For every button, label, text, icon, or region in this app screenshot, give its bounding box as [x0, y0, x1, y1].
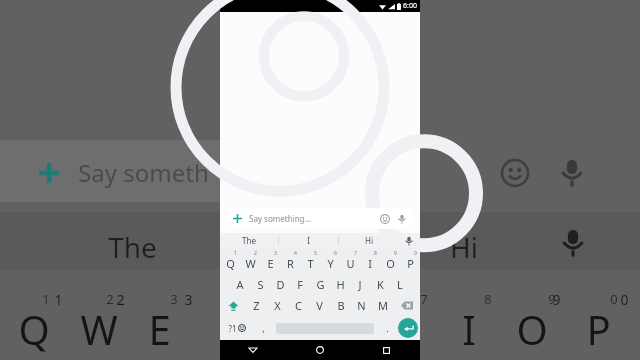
button[interactable]: M	[372, 295, 393, 316]
staticText: U	[346, 256, 355, 271]
button[interactable]: Hi	[339, 233, 398, 248]
button[interactable]: 0	[400, 249, 420, 273]
staticText: 3	[274, 250, 277, 257]
staticText: W	[245, 256, 256, 271]
button[interactable]: K	[370, 274, 390, 295]
staticText: 2	[106, 290, 114, 308]
button[interactable]: Home	[286, 340, 353, 360]
button[interactable]: Back	[220, 340, 286, 360]
staticText: 4	[232, 290, 240, 308]
button[interactable]: L	[390, 274, 410, 295]
button[interactable]: H	[330, 274, 350, 295]
staticText: S	[257, 277, 264, 292]
staticText: The	[242, 235, 256, 246]
staticText: 8	[374, 250, 377, 257]
staticText: B	[337, 298, 345, 313]
button[interactable]: Recent apps	[353, 340, 420, 360]
staticText: 4	[294, 250, 297, 257]
staticText: 2	[254, 250, 257, 257]
button[interactable]: 1	[220, 249, 240, 273]
staticText: T	[307, 256, 314, 271]
button[interactable]: C	[288, 295, 309, 316]
staticText: A	[236, 277, 244, 292]
staticText: M	[378, 298, 388, 313]
staticText: 2	[116, 290, 125, 309]
button[interactable]: 6	[320, 249, 340, 273]
staticText: Q	[18, 302, 50, 356]
button[interactable]: Add attachment	[225, 208, 415, 229]
button[interactable]: Add attachment	[231, 212, 244, 225]
button[interactable]: 4	[280, 249, 300, 273]
button[interactable]: F	[290, 274, 310, 295]
staticText: 0	[620, 290, 629, 309]
button[interactable]: Backspace	[393, 295, 420, 316]
button[interactable]: J	[350, 274, 370, 295]
button[interactable]: 5	[300, 249, 320, 273]
button[interactable]: X	[267, 295, 288, 316]
staticText: 1	[42, 290, 50, 308]
staticText: ?1	[228, 323, 237, 334]
button[interactable]: Send	[398, 318, 418, 338]
button[interactable]: 2	[240, 249, 260, 273]
staticText: 6:00	[403, 1, 417, 11]
button[interactable]: .	[376, 317, 398, 339]
staticText: I	[462, 302, 476, 356]
staticText: L	[397, 277, 403, 292]
button[interactable]: ?1	[222, 317, 252, 339]
staticText: 9	[552, 290, 561, 309]
staticText: 7	[354, 250, 357, 257]
staticText: Hi	[365, 235, 373, 246]
staticText: K	[377, 277, 384, 292]
staticText: G	[316, 277, 325, 292]
staticText: 1	[54, 290, 63, 309]
staticText: 3	[184, 290, 193, 309]
staticText: Z	[253, 298, 260, 313]
staticText: E	[267, 256, 274, 271]
button[interactable]: The	[220, 233, 278, 248]
button[interactable]: Voice typing	[398, 233, 420, 248]
button[interactable]: 3	[260, 249, 280, 273]
button[interactable]: Emoji	[378, 212, 392, 226]
staticText: J	[358, 277, 362, 292]
staticText: H	[336, 277, 345, 292]
button[interactable]: N	[351, 295, 372, 316]
button[interactable]: D	[270, 274, 290, 295]
staticText: Say something...	[249, 213, 311, 224]
staticText: 5	[314, 250, 317, 257]
staticText: 0	[414, 250, 417, 257]
staticText: 0	[610, 290, 618, 308]
staticText: C	[295, 298, 302, 313]
staticText: 8	[484, 290, 492, 308]
staticText: D	[276, 277, 285, 292]
staticText: F	[297, 277, 303, 292]
staticText: 1	[234, 250, 237, 257]
button[interactable]: A	[230, 274, 250, 295]
staticText: P	[407, 256, 414, 271]
staticText: W	[80, 302, 118, 356]
button[interactable]: I	[279, 233, 338, 248]
button[interactable]: V	[309, 295, 330, 316]
staticText: Y	[327, 256, 334, 271]
staticText: 6	[334, 250, 337, 257]
button[interactable]: 7	[340, 249, 360, 273]
button[interactable]: G	[310, 274, 330, 295]
staticText: P	[586, 302, 611, 356]
button[interactable]: 9	[380, 249, 400, 273]
staticText: .	[386, 322, 389, 334]
staticText: 7	[420, 290, 428, 308]
button[interactable]: Voice input	[395, 212, 409, 226]
staticText: 6	[358, 290, 366, 308]
staticText: N	[357, 298, 366, 313]
staticText: E	[148, 302, 171, 356]
staticText: R	[287, 256, 294, 271]
staticText: 3	[170, 290, 178, 308]
button[interactable]: Shift	[220, 295, 246, 316]
staticText: O	[386, 256, 395, 271]
button[interactable]: ,	[252, 317, 274, 339]
button[interactable]: S	[250, 274, 270, 295]
button[interactable]: B	[330, 295, 351, 316]
button[interactable]: 8	[360, 249, 380, 273]
button[interactable]: Z	[246, 295, 267, 316]
staticText: V	[316, 298, 323, 313]
